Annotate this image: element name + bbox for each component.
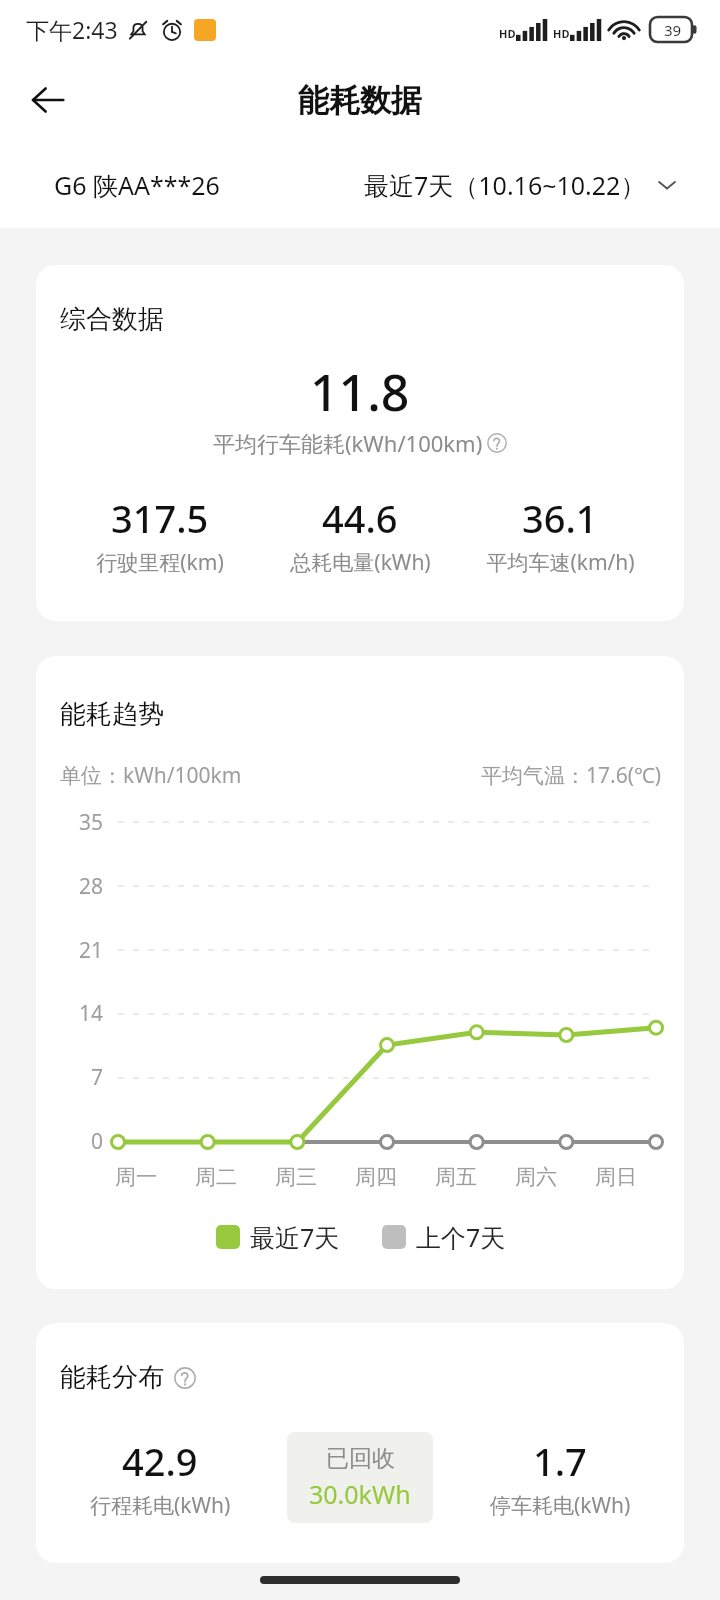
staticText: 7	[91, 1063, 104, 1092]
button[interactable]: 最近7天（10.16~10.22）	[358, 162, 684, 208]
staticText: 30.0kWh	[309, 1477, 411, 1511]
staticText: 综合数据	[60, 303, 164, 336]
button[interactable]: 能耗分布	[36, 1323, 684, 1563]
staticText: 28	[79, 872, 104, 901]
button[interactable]: 能耗趋势	[36, 656, 684, 1289]
staticText: 39	[664, 20, 682, 40]
staticText: 下午2:43	[26, 14, 118, 45]
staticText: 能耗分布	[60, 1361, 164, 1394]
staticText: HD	[553, 26, 570, 41]
staticText: 14	[79, 999, 104, 1028]
staticText: 周五	[435, 1164, 477, 1190]
staticText: 21	[79, 936, 104, 965]
staticText: 42.9	[122, 1435, 198, 1487]
staticText: 已回收	[326, 1444, 395, 1473]
staticText: 总耗电量(kWh)	[290, 548, 431, 577]
staticText: HD	[499, 26, 516, 41]
staticText: 上个7天	[416, 1220, 506, 1254]
staticText: 停车耗电(kWh)	[490, 1491, 631, 1520]
staticText: 317.5	[111, 492, 209, 544]
staticText: 44.6	[322, 492, 398, 544]
button[interactable]: 综合数据	[36, 265, 684, 621]
staticText: 周日	[595, 1164, 637, 1190]
staticText: G6 陕AA***26	[54, 168, 220, 202]
staticText: 平均行车能耗(kWh/100km)	[213, 428, 483, 458]
staticText: 11.8	[310, 358, 410, 426]
staticText: 35	[79, 808, 104, 837]
staticText: 单位：kWh/100km	[60, 761, 242, 790]
staticText: 周四	[355, 1164, 397, 1190]
button[interactable]: Back	[14, 66, 82, 134]
staticText: 最近7天	[250, 1220, 340, 1254]
staticText: 周三	[275, 1164, 317, 1190]
button[interactable]: 上个7天	[378, 1216, 510, 1258]
staticText: 平均气温：17.6(℃)	[481, 761, 662, 790]
staticText: 能耗数据	[298, 81, 422, 120]
staticText: 平均车速(km/h)	[486, 548, 635, 577]
staticText: 行程耗电(kWh)	[90, 1491, 231, 1520]
button[interactable]: 最近7天	[212, 1216, 344, 1258]
staticText: 最近7天（10.16~10.22）	[364, 168, 646, 202]
staticText: 能耗趋势	[60, 698, 164, 731]
staticText: 36.1	[522, 492, 598, 544]
staticText: 0	[91, 1127, 104, 1156]
staticText: 周一	[115, 1164, 157, 1190]
staticText: 1.7	[533, 1435, 587, 1487]
staticText: 周二	[195, 1164, 237, 1190]
staticText: 行驶里程(km)	[96, 548, 224, 577]
staticText: 周六	[515, 1164, 557, 1190]
